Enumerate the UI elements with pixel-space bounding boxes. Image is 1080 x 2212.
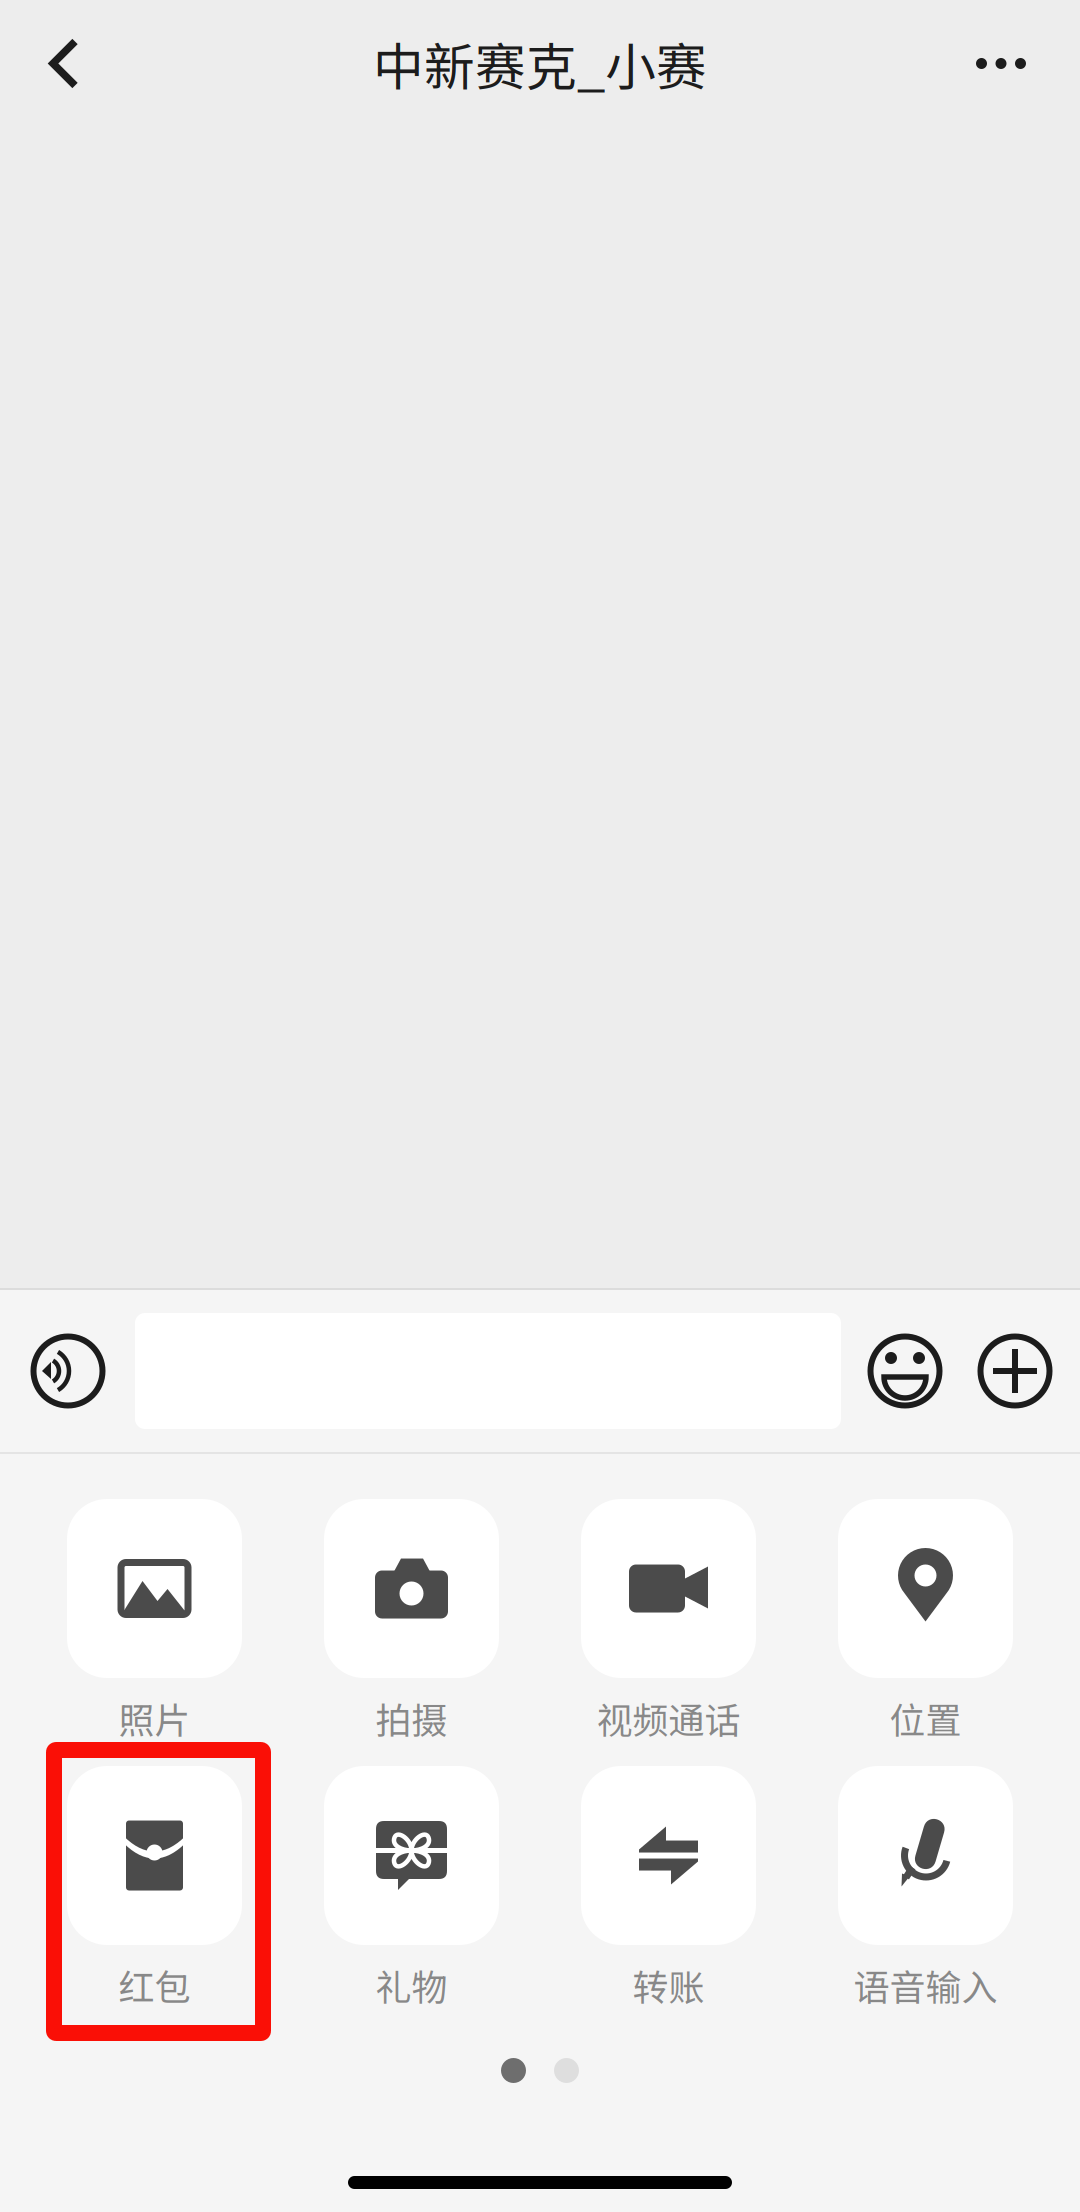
- button[interactable]: Attachments: [960, 1290, 1070, 1452]
- staticText: 中新赛克_小赛: [373, 27, 707, 100]
- staticText: 拍摄: [375, 1692, 447, 1744]
- button[interactable]: 照片: [26, 1499, 283, 1766]
- staticText: 照片: [118, 1692, 190, 1744]
- button[interactable]: Emoji: [850, 1290, 960, 1452]
- staticText: 转账: [632, 1959, 704, 2011]
- button[interactable]: 礼物: [283, 1766, 540, 2033]
- button[interactable]: 视频通话: [540, 1499, 797, 1766]
- button[interactable]: Back: [12, 3, 116, 123]
- button[interactable]: More: [934, 3, 1068, 123]
- staticText: 视频通话: [596, 1692, 740, 1744]
- staticText: 礼物: [375, 1959, 447, 2011]
- button[interactable]: Voice message: [10, 1290, 126, 1452]
- staticText: 语音输入: [853, 1959, 997, 2011]
- button[interactable]: 语音输入: [797, 1766, 1054, 2033]
- button[interactable]: 拍摄: [283, 1499, 540, 1766]
- button[interactable]: 红包: [26, 1766, 283, 2033]
- button[interactable]: 位置: [797, 1499, 1054, 1766]
- staticText: 红包: [118, 1959, 190, 2011]
- staticText: 位置: [889, 1692, 961, 1744]
- button[interactable]: 转账: [540, 1766, 797, 2033]
